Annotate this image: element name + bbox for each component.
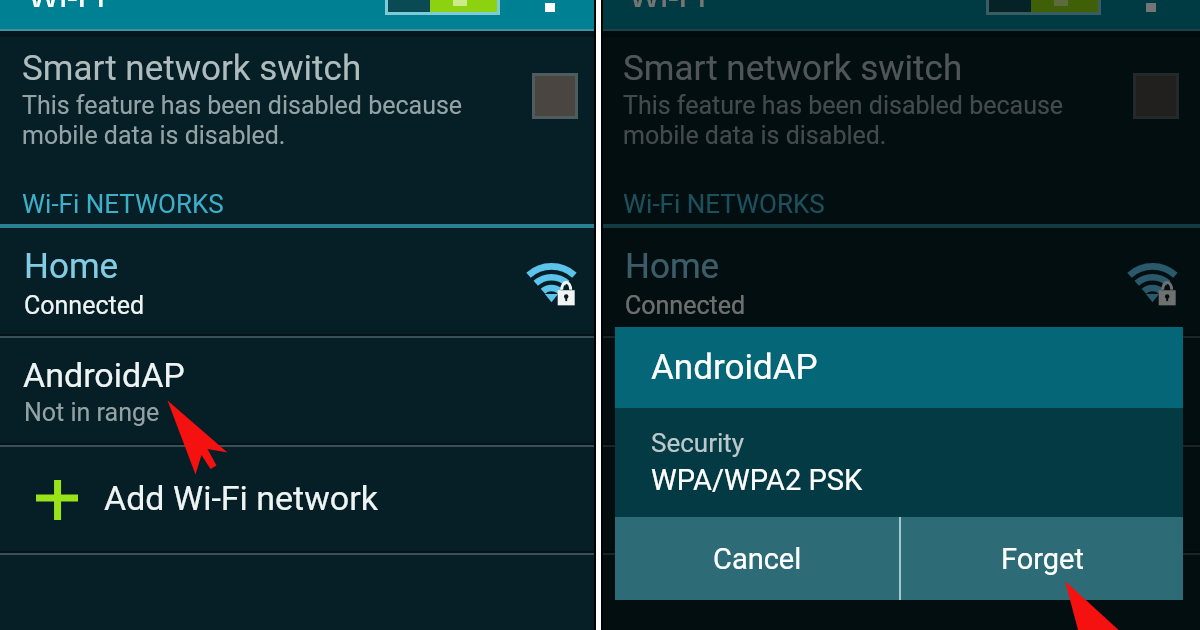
staticText: WPA/WPA2 PSK — [651, 463, 863, 497]
staticText: AndroidAP — [624, 355, 786, 395]
staticText: Smart network switch — [623, 48, 963, 89]
staticText: Wi-Fi — [629, 0, 707, 7]
staticText: This feature has been disabled because m… — [22, 91, 463, 150]
button[interactable] — [601, 446, 1200, 552]
staticText: AndroidAP — [23, 355, 185, 395]
button[interactable] — [0, 227, 596, 335]
button[interactable] — [601, 337, 1200, 444]
staticText: Home — [24, 246, 119, 287]
staticText: Wi-Fi NETWORKS — [22, 189, 224, 219]
staticText: Wi-Fi NETWORKS — [623, 189, 825, 219]
staticText: Cancel — [713, 542, 802, 576]
staticText: AndroidAP — [651, 347, 818, 388]
staticText: Smart network switch — [22, 48, 362, 89]
staticText: Not in range — [24, 398, 160, 427]
button[interactable]: Wi-Fi on/off switch — [385, 0, 500, 15]
staticText: Not in range — [625, 398, 761, 427]
button[interactable]: Forget — [901, 517, 1183, 600]
button[interactable] — [0, 337, 596, 444]
staticText: Home — [625, 246, 720, 287]
staticText: Add Wi-Fi network — [705, 478, 979, 518]
staticText: Security — [651, 428, 745, 458]
staticText: Connected — [625, 291, 746, 320]
staticText: Connected — [24, 291, 145, 320]
button[interactable] — [0, 446, 596, 552]
staticText: Forget — [1001, 542, 1084, 576]
staticText: This feature has been disabled because m… — [623, 91, 1064, 150]
button[interactable] — [601, 29, 1200, 169]
button[interactable]: Wi-Fi on/off switch — [986, 0, 1101, 15]
staticText: Wi-Fi — [28, 0, 106, 7]
button[interactable]: Cancel — [615, 517, 899, 600]
button[interactable] — [601, 227, 1200, 335]
button[interactable] — [0, 29, 596, 169]
staticText: Add Wi-Fi network — [104, 478, 378, 518]
